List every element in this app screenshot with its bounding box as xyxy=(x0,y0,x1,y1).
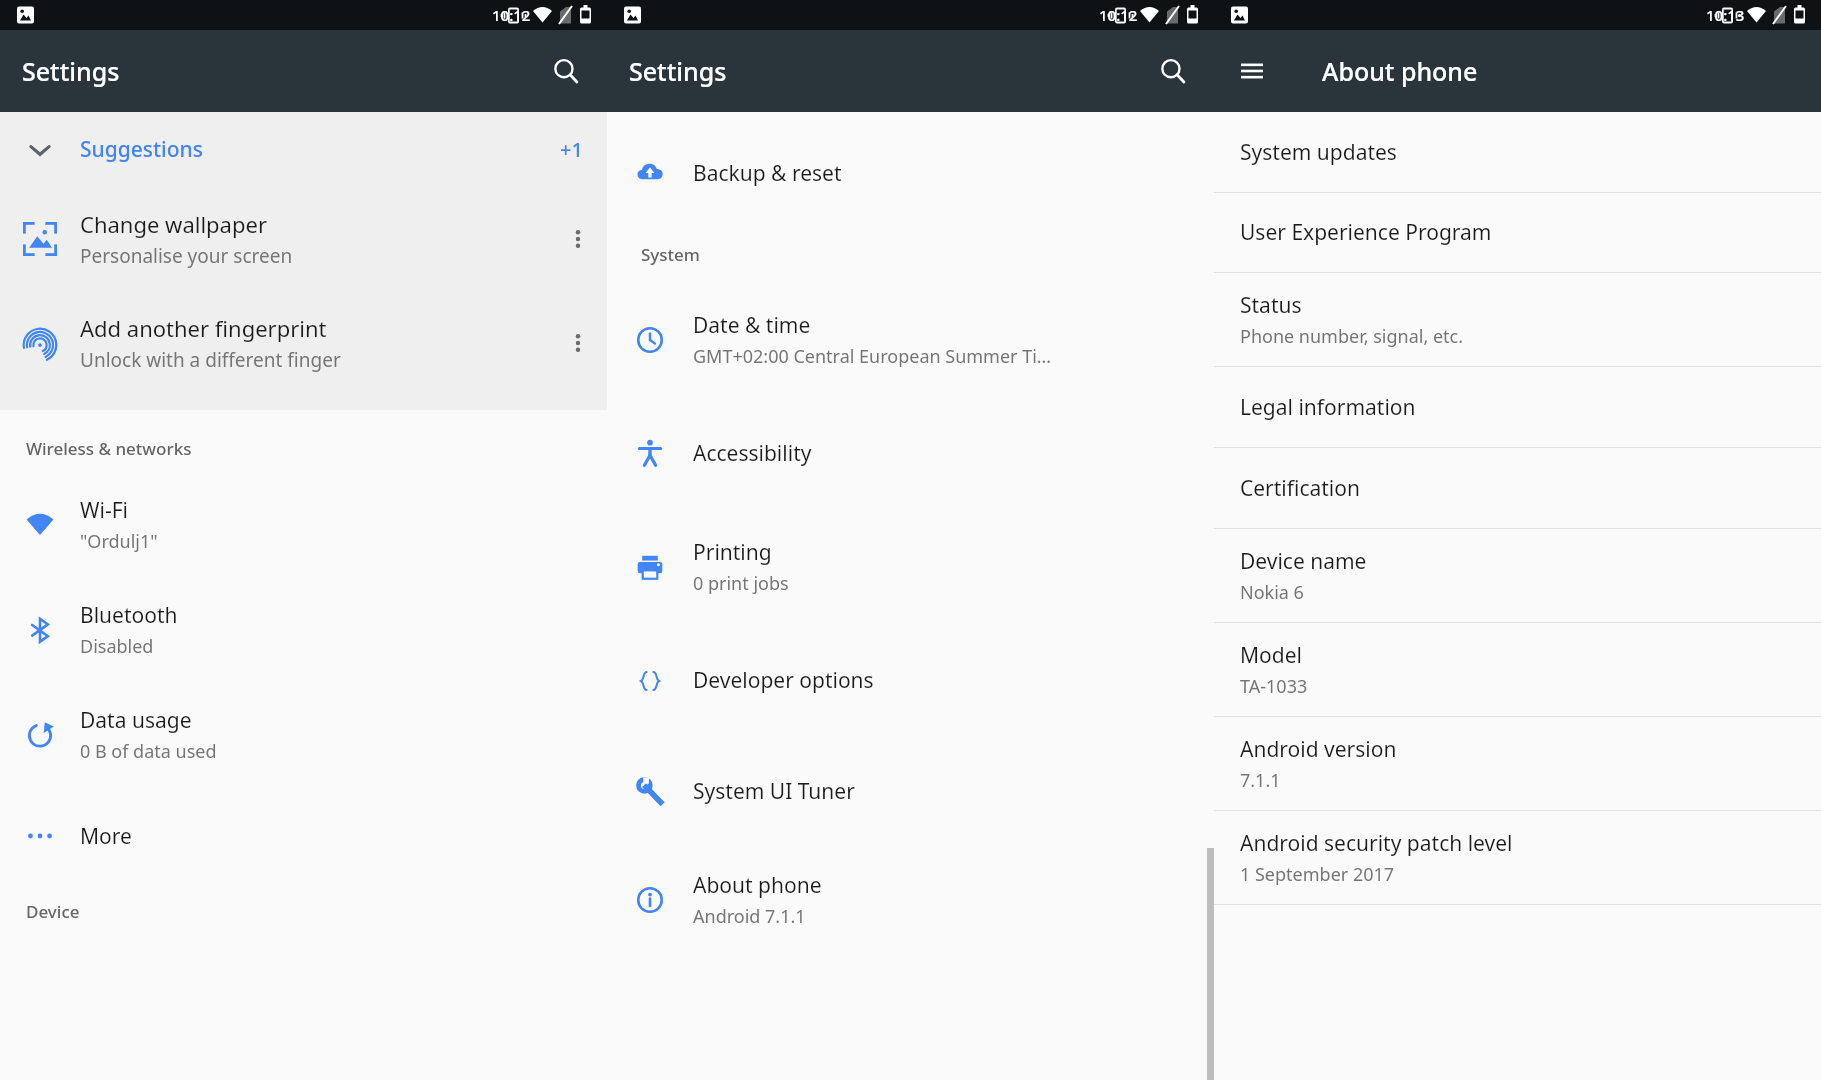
button[interactable]: Navigation menu xyxy=(1228,47,1276,95)
button[interactable]: Status xyxy=(1214,273,1821,366)
staticText: About phone xyxy=(1322,54,1478,88)
button[interactable]: Printing xyxy=(607,509,1214,624)
staticText: Device xyxy=(26,900,80,923)
button[interactable]: Add another fingerprint xyxy=(0,291,607,395)
staticText: 10:13 xyxy=(1706,5,1745,25)
button[interactable]: Developer options xyxy=(607,624,1214,737)
staticText: Personalise your screen xyxy=(80,243,293,269)
button[interactable]: About phone xyxy=(607,845,1214,955)
staticText: 10:12 xyxy=(492,5,531,25)
button[interactable]: Certification xyxy=(1214,448,1821,528)
staticText: Settings xyxy=(629,54,727,88)
staticText: 1 September 2017 xyxy=(1240,862,1395,887)
staticText: Device name xyxy=(1240,547,1367,576)
staticText: Wi-Fi xyxy=(80,496,129,525)
staticText: Data usage xyxy=(80,706,192,735)
staticText: Unlock with a different finger xyxy=(80,347,341,373)
staticText: Model xyxy=(1240,641,1302,670)
staticText: Disabled xyxy=(80,634,154,659)
staticText: Nokia 6 xyxy=(1240,580,1304,605)
staticText: Android security patch level xyxy=(1240,829,1513,858)
staticText: Status xyxy=(1240,291,1302,320)
button[interactable]: More options xyxy=(549,291,607,395)
button[interactable]: System updates xyxy=(1214,112,1821,192)
staticText: Phone number, signal, etc. xyxy=(1240,324,1464,349)
button[interactable]: Backup & reset xyxy=(607,126,1214,220)
button[interactable]: Android version xyxy=(1214,717,1821,810)
staticText: Android 7.1.1 xyxy=(693,904,806,929)
button[interactable]: Wi-Fi xyxy=(0,472,607,577)
button[interactable]: System UI Tuner xyxy=(607,737,1214,845)
staticText: "Ordulj1" xyxy=(80,529,158,554)
button[interactable]: Data usage xyxy=(0,682,607,787)
button[interactable]: Search xyxy=(541,46,591,96)
staticText: System updates xyxy=(1240,138,1397,167)
button[interactable]: Change wallpaper xyxy=(0,187,607,291)
staticText: 0 print jobs xyxy=(693,571,789,596)
button[interactable]: More options xyxy=(549,187,607,291)
staticText: Legal information xyxy=(1240,393,1416,422)
staticText: System xyxy=(641,243,700,266)
button[interactable]: Legal information xyxy=(1214,367,1821,447)
button[interactable]: Search xyxy=(1148,46,1198,96)
staticText: Suggestions xyxy=(80,135,203,164)
button[interactable]: Android security patch level xyxy=(1214,811,1821,904)
button[interactable]: Model xyxy=(1214,623,1821,716)
staticText: Date & time xyxy=(693,311,811,340)
button[interactable]: Device name xyxy=(1214,529,1821,622)
staticText: 7.1.1 xyxy=(1240,768,1281,793)
staticText: Change wallpaper xyxy=(80,209,267,239)
staticText: Accessibility xyxy=(693,439,812,468)
button[interactable]: Date & time xyxy=(607,282,1214,397)
staticText: More xyxy=(80,822,132,851)
staticText: Certification xyxy=(1240,474,1360,503)
button[interactable]: Accessibility xyxy=(607,397,1214,509)
staticText: 10:12 xyxy=(1099,5,1138,25)
button[interactable]: Bluetooth xyxy=(0,577,607,682)
staticText: Bluetooth xyxy=(80,601,178,630)
button[interactable]: User Experience Program xyxy=(1214,193,1821,272)
staticText: Developer options xyxy=(693,666,874,695)
staticText: System UI Tuner xyxy=(693,777,855,806)
staticText: Printing xyxy=(693,538,772,567)
staticText: 0 B of data used xyxy=(80,739,217,764)
staticText: Android version xyxy=(1240,735,1397,764)
staticText: Wireless & networks xyxy=(26,437,192,460)
staticText: GMT+02:00 Central European Summer Ti… xyxy=(693,344,1052,369)
staticText: +1 xyxy=(560,136,583,163)
staticText: TA-1033 xyxy=(1240,674,1308,699)
staticText: Backup & reset xyxy=(693,159,842,188)
staticText: User Experience Program xyxy=(1240,218,1492,247)
staticText: Settings xyxy=(22,54,120,88)
button[interactable]: More xyxy=(0,787,607,885)
staticText: Add another fingerprint xyxy=(80,313,327,343)
button[interactable]: Suggestions xyxy=(0,112,607,187)
staticText: About phone xyxy=(693,871,822,900)
